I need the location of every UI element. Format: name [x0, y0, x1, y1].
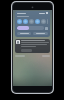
- button[interactable]: Toggle off: [41, 19, 46, 24]
- button[interactable]: Toggle on: [35, 19, 40, 24]
- button[interactable]: [17, 32, 31, 35]
- button[interactable]: Toggle on: [17, 19, 22, 24]
- button[interactable]: [33, 32, 48, 35]
- button[interactable]: Reply: [21, 49, 32, 52]
- button[interactable]: Reply: [15, 39, 50, 53]
- button[interactable]: Toggle off: [29, 19, 34, 24]
- button[interactable]: Toggle on: [23, 19, 28, 24]
- button[interactable]: Brightness: [17, 26, 44, 30]
- button[interactable]: Toggle off: [47, 19, 48, 24]
- button[interactable]: Auto brightness: [45, 27, 48, 30]
